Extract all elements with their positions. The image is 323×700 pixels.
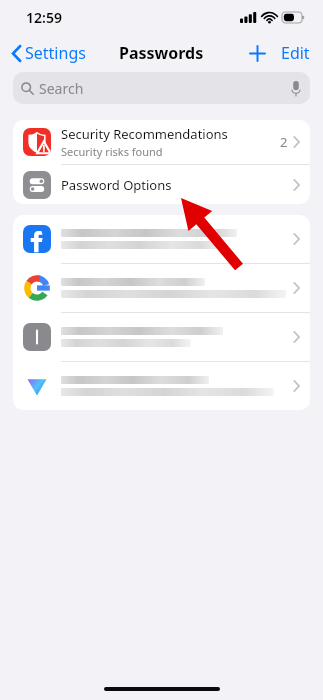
button[interactable]: Password Options <box>13 165 310 204</box>
button[interactable]: Security Recommendations <box>13 120 310 164</box>
staticText: Security risks found <box>61 144 163 159</box>
button[interactable]: Edit <box>278 38 313 68</box>
staticText: Security Recommendations <box>61 125 228 143</box>
staticText: Settings <box>25 42 86 64</box>
staticText: Passwords <box>119 42 204 64</box>
staticText: Search <box>39 79 84 98</box>
staticText: Edit <box>281 42 310 64</box>
staticText: 12:59 <box>26 8 62 27</box>
button[interactable]: Settings <box>8 38 90 68</box>
button[interactable] <box>13 313 310 361</box>
button[interactable] <box>13 264 310 312</box>
button[interactable] <box>13 215 310 263</box>
staticText: Password Options <box>61 176 293 194</box>
button[interactable]: Search <box>13 72 310 104</box>
button[interactable]: Add password <box>245 41 270 66</box>
staticText: 2 <box>280 133 288 151</box>
button[interactable] <box>13 362 310 410</box>
